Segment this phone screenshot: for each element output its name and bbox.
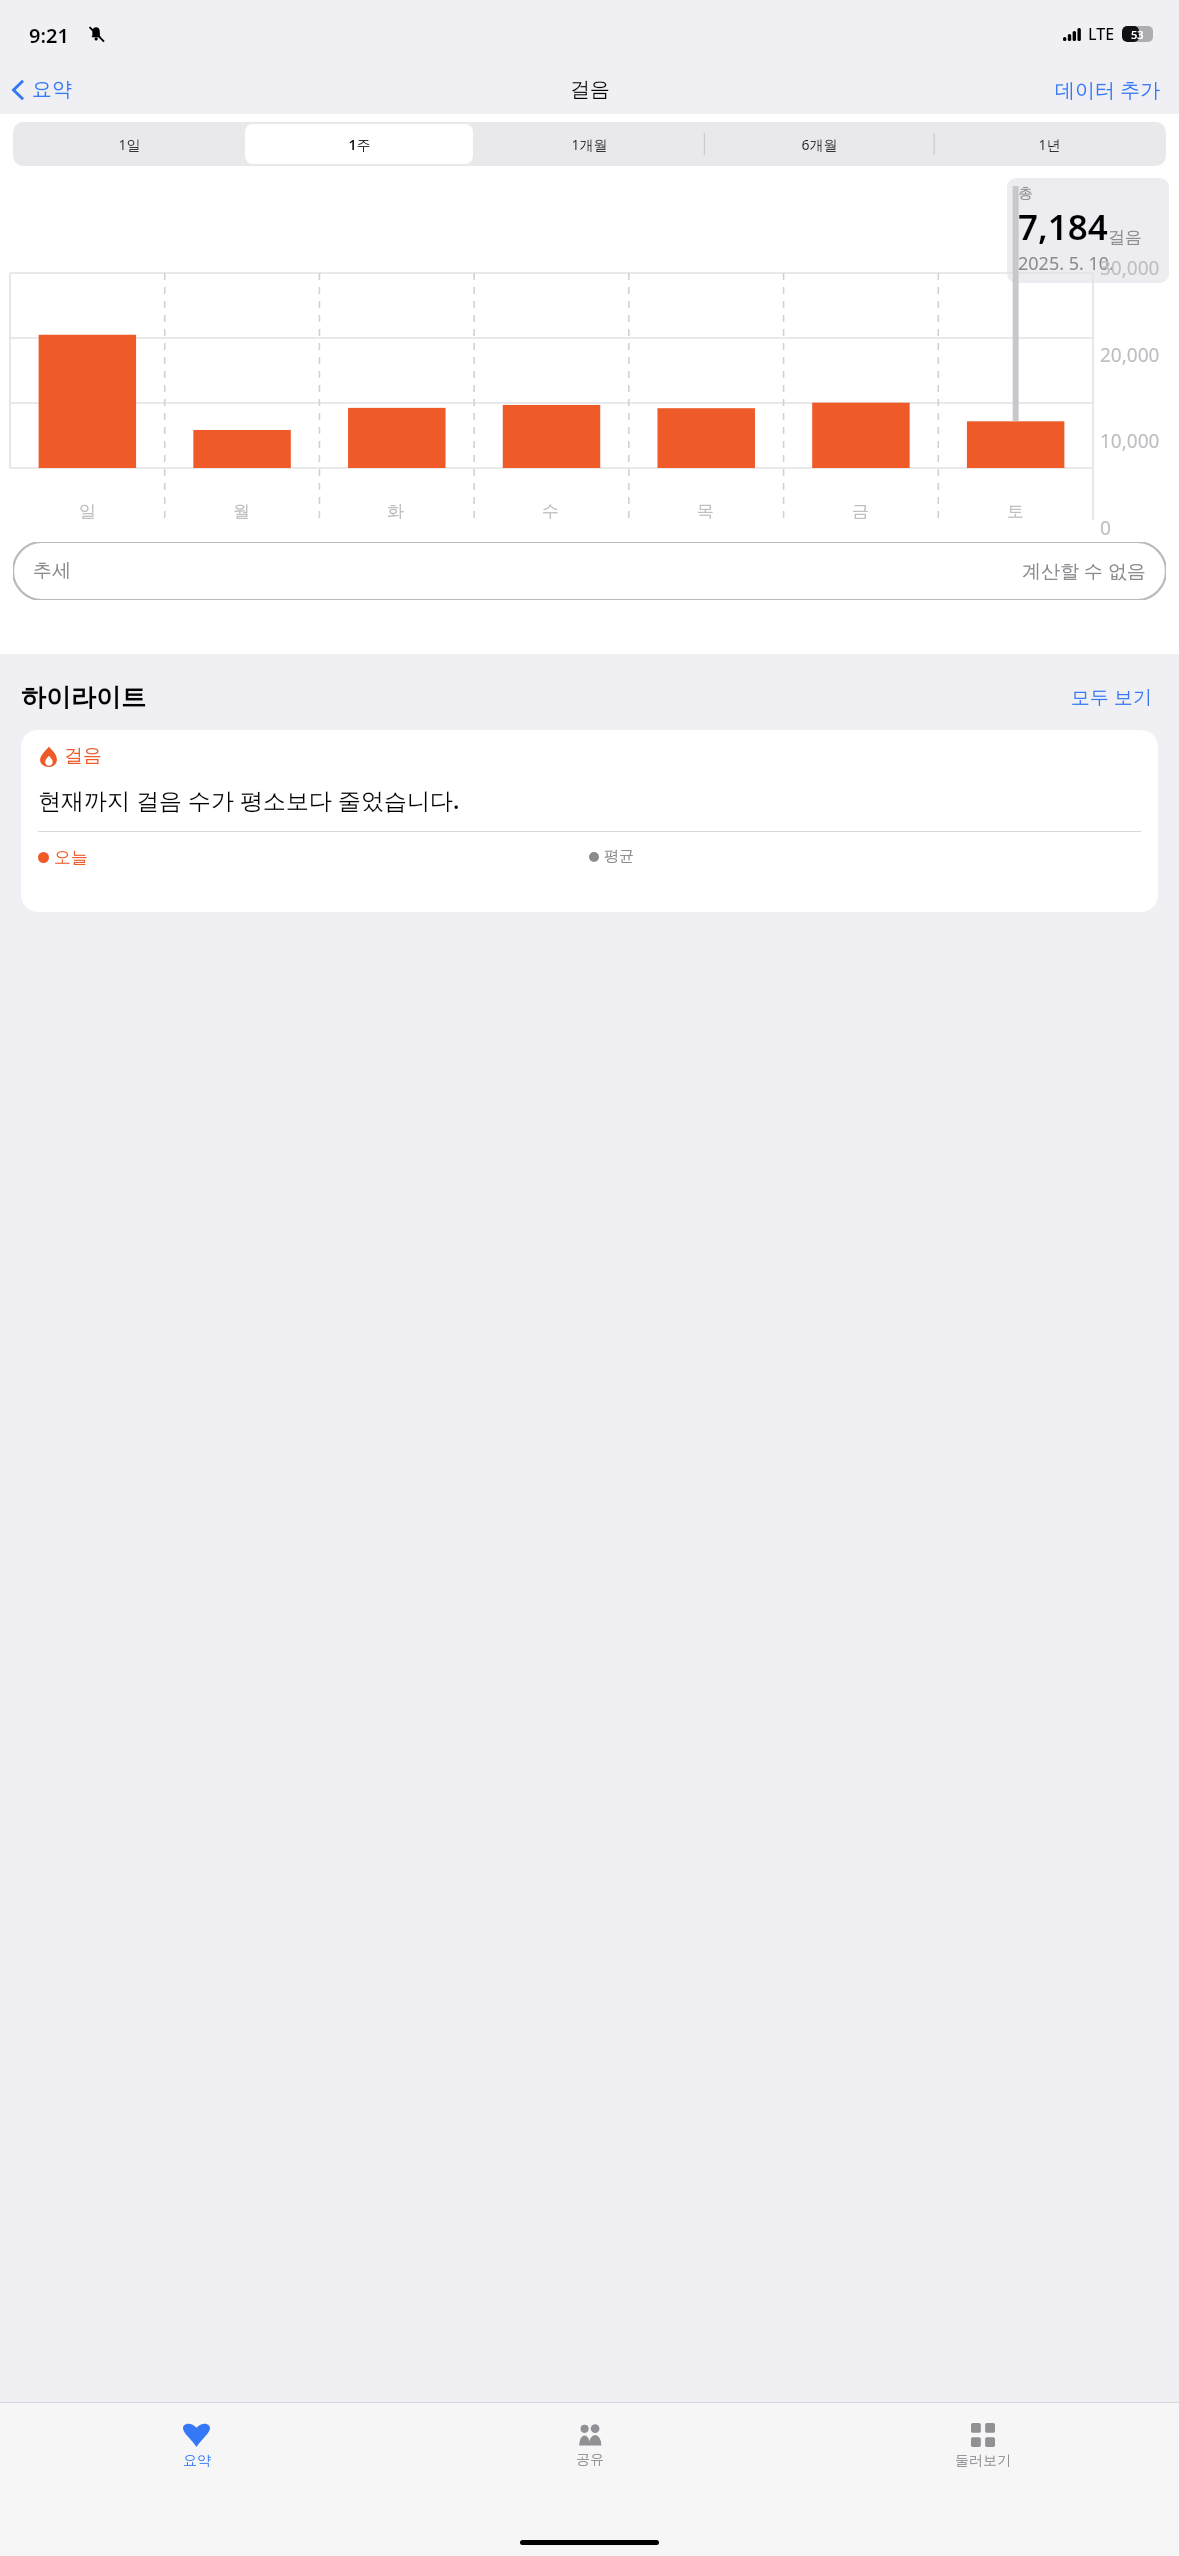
button[interactable]: 모두 보기 — [1065, 678, 1158, 716]
staticText: 금 — [852, 501, 869, 522]
button[interactable]: 1주 — [245, 124, 473, 164]
button[interactable]: 1개월 — [475, 124, 703, 164]
staticText: 걸음 — [570, 77, 610, 102]
staticText: 걸음 — [64, 744, 102, 768]
staticText: 10,000 — [1100, 428, 1160, 454]
button[interactable]: 걸음 — [21, 730, 1158, 912]
staticText: 7,184 — [1018, 203, 1108, 251]
staticText: 목 — [697, 501, 714, 522]
staticText: 수 — [542, 501, 559, 522]
staticText: LTE — [1088, 23, 1115, 45]
staticText: 평균 — [604, 847, 634, 866]
staticText: 일 — [79, 501, 96, 522]
staticText: 걸음 — [1108, 227, 1142, 248]
staticText: 오늘 — [54, 847, 88, 868]
staticText: 1년 — [1038, 135, 1061, 154]
staticText: 6개월 — [801, 135, 838, 154]
staticText: 공유 — [576, 2451, 604, 2469]
button[interactable]: 1년 — [935, 124, 1163, 164]
button[interactable]: 둘러보기 — [786, 2403, 1179, 2489]
staticText: 화 — [387, 501, 404, 522]
staticText: 9:21 — [29, 22, 69, 49]
staticText: 총 — [1018, 184, 1033, 203]
staticText: 1주 — [348, 135, 371, 154]
button[interactable]: 추세 — [13, 542, 1166, 600]
button[interactable]: 공유 — [393, 2403, 786, 2489]
staticText: 현재까지 걸음 수가 평소보다 줄었습니다. — [38, 784, 460, 815]
button[interactable]: 데이터 추가 — [1037, 68, 1179, 111]
staticText: 하이라이트 — [21, 682, 146, 713]
button[interactable]: 요약 — [0, 2403, 393, 2489]
staticText: 30,000 — [1100, 255, 1160, 281]
staticText: 1개월 — [571, 135, 608, 154]
staticText: 2025. 5. 10. — [1018, 251, 1114, 276]
staticText: 월 — [233, 501, 250, 522]
staticText: 토 — [1007, 501, 1024, 522]
staticText: 계산할 수 없음 — [1022, 558, 1146, 584]
staticText: 0 — [1100, 515, 1111, 541]
button[interactable]: 6개월 — [705, 124, 933, 164]
staticText: 53 — [1131, 27, 1144, 42]
staticText: 20,000 — [1100, 342, 1160, 368]
staticText: 추세 — [33, 559, 71, 583]
staticText: 요약 — [183, 2452, 211, 2470]
staticText: 1일 — [118, 135, 141, 154]
button[interactable]: 요약 — [0, 71, 82, 108]
button[interactable]: 1일 — [16, 124, 243, 164]
staticText: 둘러보기 — [955, 2452, 1011, 2470]
staticText: 요약 — [32, 77, 72, 102]
